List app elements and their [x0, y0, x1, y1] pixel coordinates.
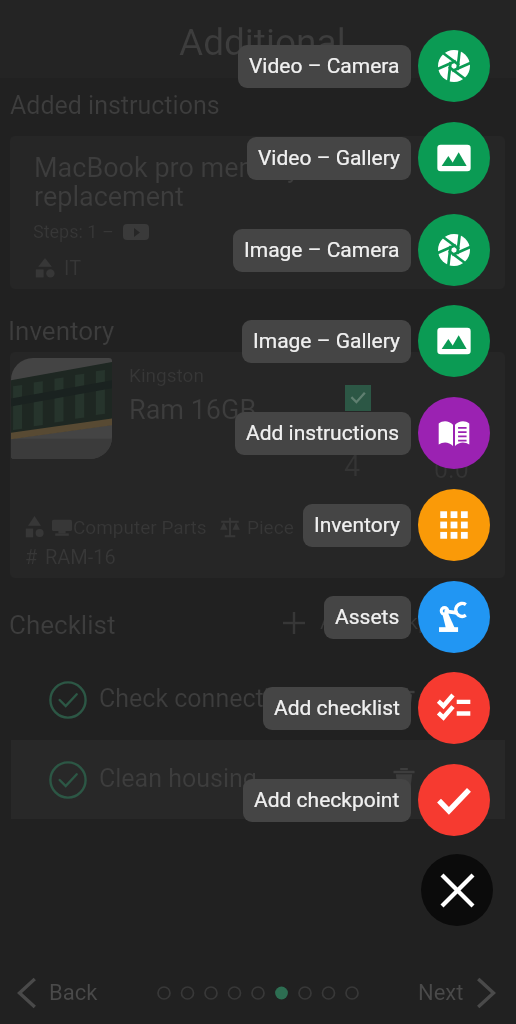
staticText: Added instructions — [10, 91, 220, 120]
button[interactable]: Image – Gallery — [242, 320, 411, 363]
staticText: Ram 16GB — [129, 394, 257, 426]
button[interactable]: MacBook pro memory replacement — [10, 136, 505, 289]
button[interactable]: Add checklist — [263, 687, 411, 730]
staticText: Add checklist — [274, 696, 400, 721]
staticText: Additional — [179, 21, 346, 64]
button[interactable]: Image – Camera — [233, 229, 411, 272]
staticText: Inventory — [314, 513, 400, 538]
button[interactable]: Image – Camera — [418, 214, 490, 286]
button[interactable]: Assets — [324, 596, 411, 639]
staticText: IT — [64, 256, 82, 279]
button[interactable]: Check connections — [11, 660, 505, 739]
button[interactable]: Next — [404, 969, 516, 1017]
staticText: Inventory — [8, 316, 115, 346]
staticText: 0.0 — [434, 455, 469, 484]
button[interactable]: Add checkpoint — [278, 606, 470, 639]
button[interactable]: Back — [0, 969, 112, 1017]
staticText: Computer Parts — [73, 516, 207, 538]
button[interactable]: Video – Gallery — [247, 137, 411, 180]
staticText: Steps: 1 – — [33, 221, 114, 242]
staticText: Checklist — [9, 610, 116, 640]
staticText: # — [25, 545, 38, 568]
button[interactable]: Add checkpoint — [243, 779, 411, 822]
staticText: Assets — [335, 605, 400, 630]
staticText: Video – Camera — [249, 54, 400, 79]
staticText: Image – Gallery — [253, 329, 400, 354]
button[interactable]: Add checklist — [418, 672, 490, 744]
staticText: MacBook pro memory replacement — [34, 152, 300, 213]
button[interactable]: Clean housing — [11, 740, 505, 819]
staticText: Check connections — [99, 684, 311, 713]
button[interactable]: Close menu — [421, 854, 493, 926]
button[interactable]: Image – Gallery — [418, 305, 490, 377]
button[interactable]: Assets — [418, 581, 490, 653]
staticText: RAM-16 — [45, 545, 116, 568]
staticText: Back — [49, 980, 98, 1006]
staticText: Piece — [247, 516, 294, 538]
button[interactable]: Kingston — [10, 352, 505, 578]
staticText: Clean housing — [99, 764, 257, 793]
staticText: 4 — [344, 449, 361, 483]
button[interactable]: Inventory — [418, 489, 490, 561]
button[interactable]: Inventory — [303, 504, 411, 547]
staticText: Video – Gallery — [258, 146, 400, 171]
staticText: Add checkpoint — [320, 610, 466, 635]
staticText: Add checkpoint — [254, 788, 400, 813]
staticText: Kingston — [129, 364, 204, 386]
staticText: Add instructions — [246, 421, 400, 446]
staticText: Image – Camera — [244, 238, 400, 263]
button[interactable]: Video – Gallery — [418, 122, 490, 194]
button[interactable]: Add instructions — [235, 412, 411, 455]
button[interactable]: Add checkpoint — [418, 764, 490, 836]
staticText: Next — [418, 980, 464, 1006]
button[interactable]: Add instructions — [418, 397, 490, 469]
button[interactable]: Video – Camera — [418, 30, 490, 102]
button[interactable]: Video – Camera — [238, 45, 411, 88]
